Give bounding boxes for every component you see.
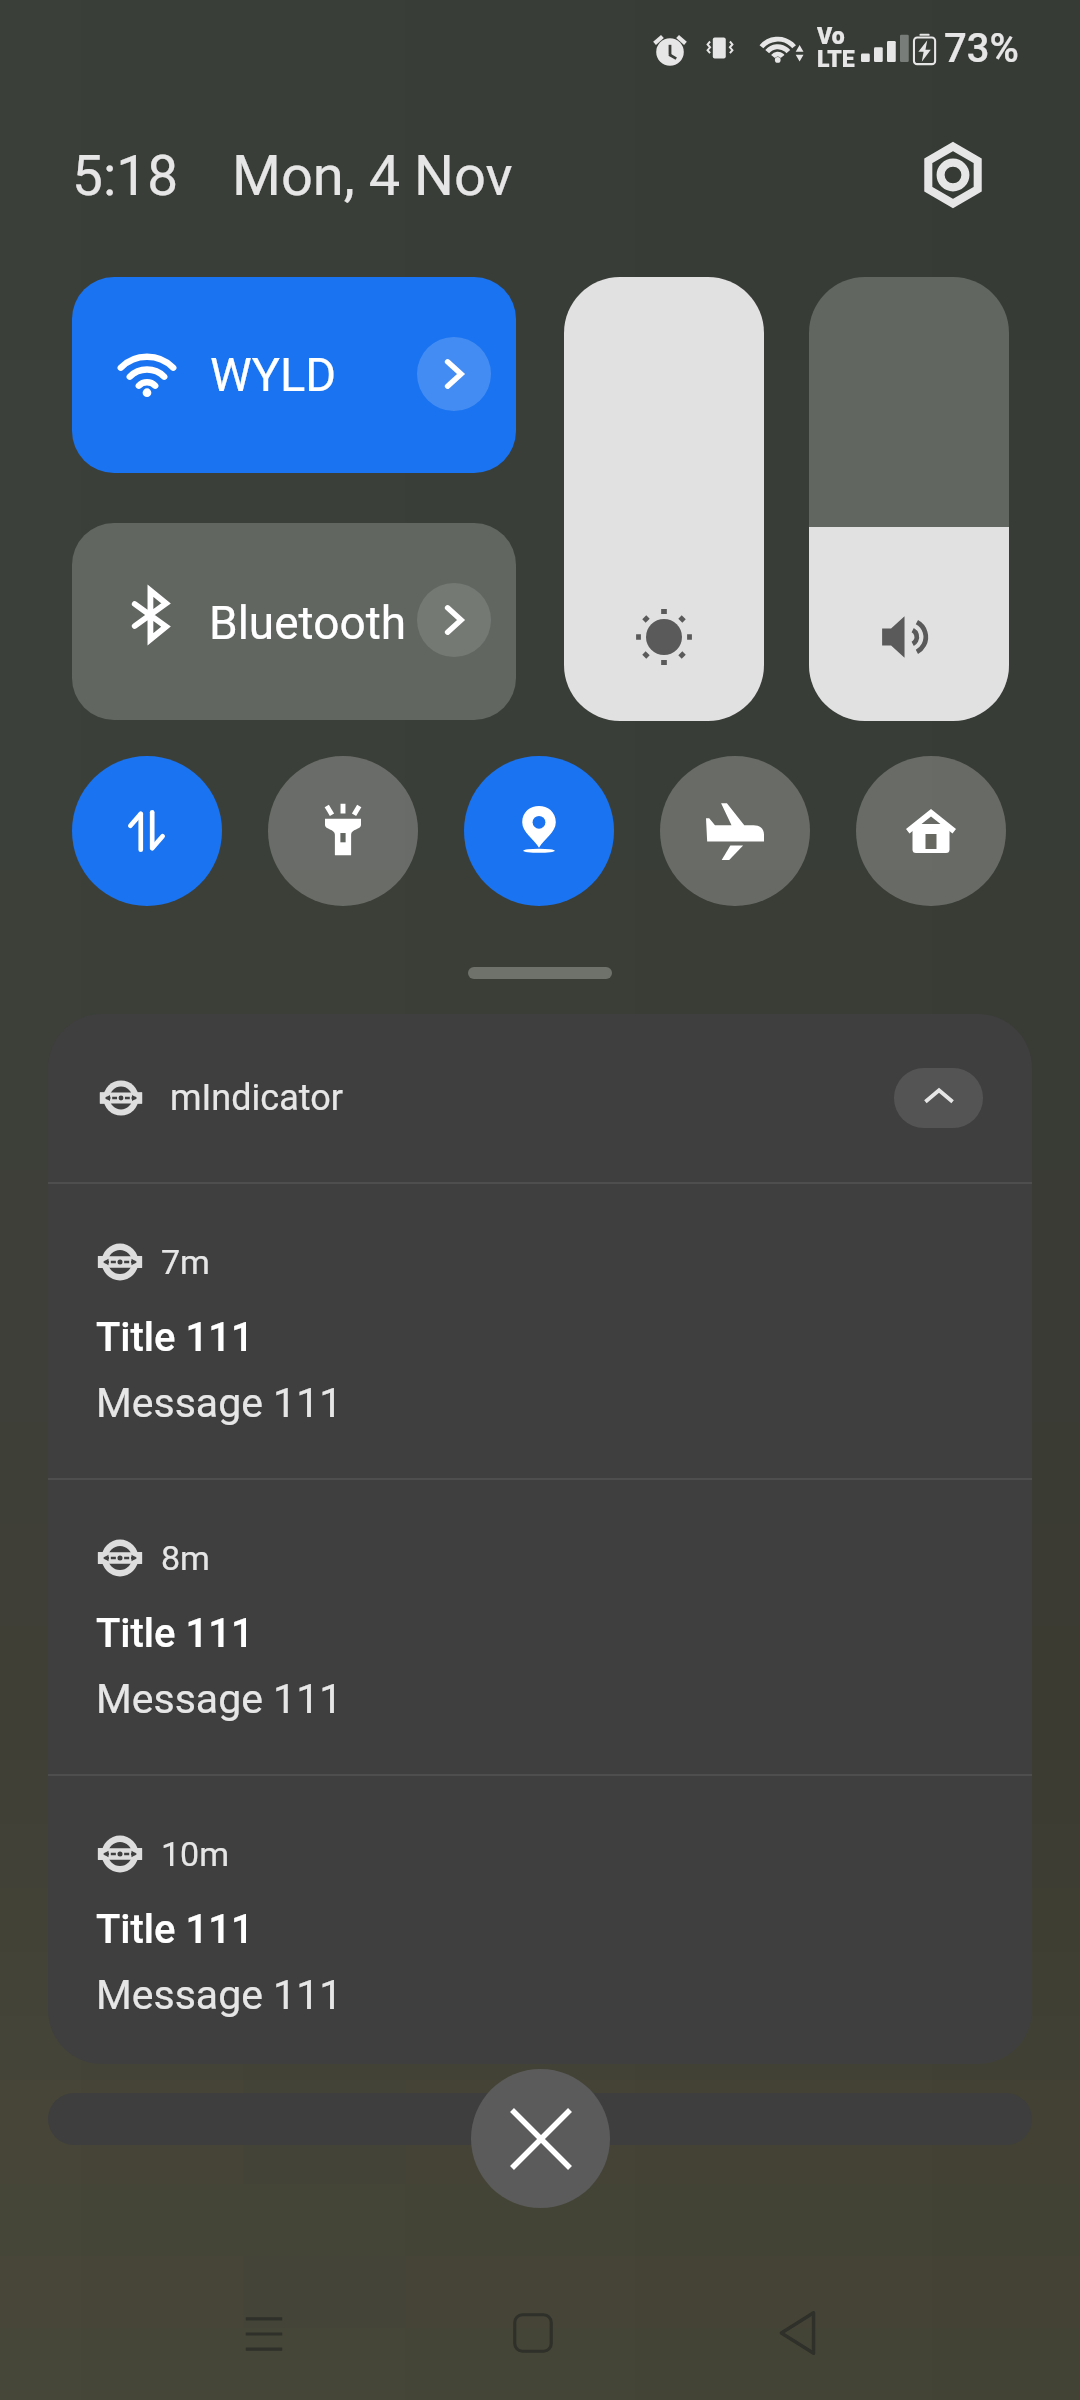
button[interactable]: Brightness: [564, 277, 764, 721]
button[interactable]: Settings: [910, 132, 996, 218]
staticText: Message 111: [96, 1971, 343, 2019]
staticText: Title 111: [96, 1610, 254, 1657]
staticText: mIndicator: [170, 1077, 343, 1119]
staticText: Title 111: [96, 1314, 254, 1361]
button[interactable]: Home: [856, 756, 1006, 906]
button[interactable]: Location: [464, 756, 614, 906]
button[interactable]: 10m: [48, 1776, 1032, 2064]
staticText: Message 111: [96, 1675, 343, 1723]
button[interactable]: Clear all notifications: [471, 2069, 610, 2208]
staticText: Message 111: [96, 1379, 343, 1427]
button[interactable]: Airplane mode: [660, 756, 810, 906]
staticText: Vo LTE: [817, 23, 855, 73]
staticText: Mon, 4 Nov: [232, 143, 513, 209]
button[interactable]: Mobile data: [72, 756, 222, 906]
button[interactable]: WYLD: [72, 277, 516, 473]
staticText: 10m: [161, 1834, 230, 1874]
button[interactable]: Bluetooth: [72, 523, 516, 720]
button[interactable]: Collapse: [894, 1068, 983, 1128]
button[interactable]: 8m: [48, 1480, 1032, 1774]
staticText: 73%: [944, 25, 1019, 72]
staticText: 8m: [161, 1538, 210, 1578]
button[interactable]: Volume: [809, 277, 1009, 721]
button[interactable]: mIndicator: [48, 1014, 1032, 1182]
button[interactable]: Home: [478, 2278, 588, 2388]
button[interactable]: Flashlight: [268, 756, 418, 906]
button[interactable]: Recents: [209, 2279, 319, 2389]
staticText: Title 111: [96, 1906, 254, 1953]
staticText: Bluetooth: [209, 596, 407, 650]
button[interactable]: Back: [742, 2278, 852, 2388]
staticText: WYLD: [210, 347, 337, 402]
button[interactable]: 7m: [48, 1184, 1032, 1478]
staticText: 7m: [161, 1242, 210, 1282]
staticText: 5:18: [72, 144, 179, 208]
